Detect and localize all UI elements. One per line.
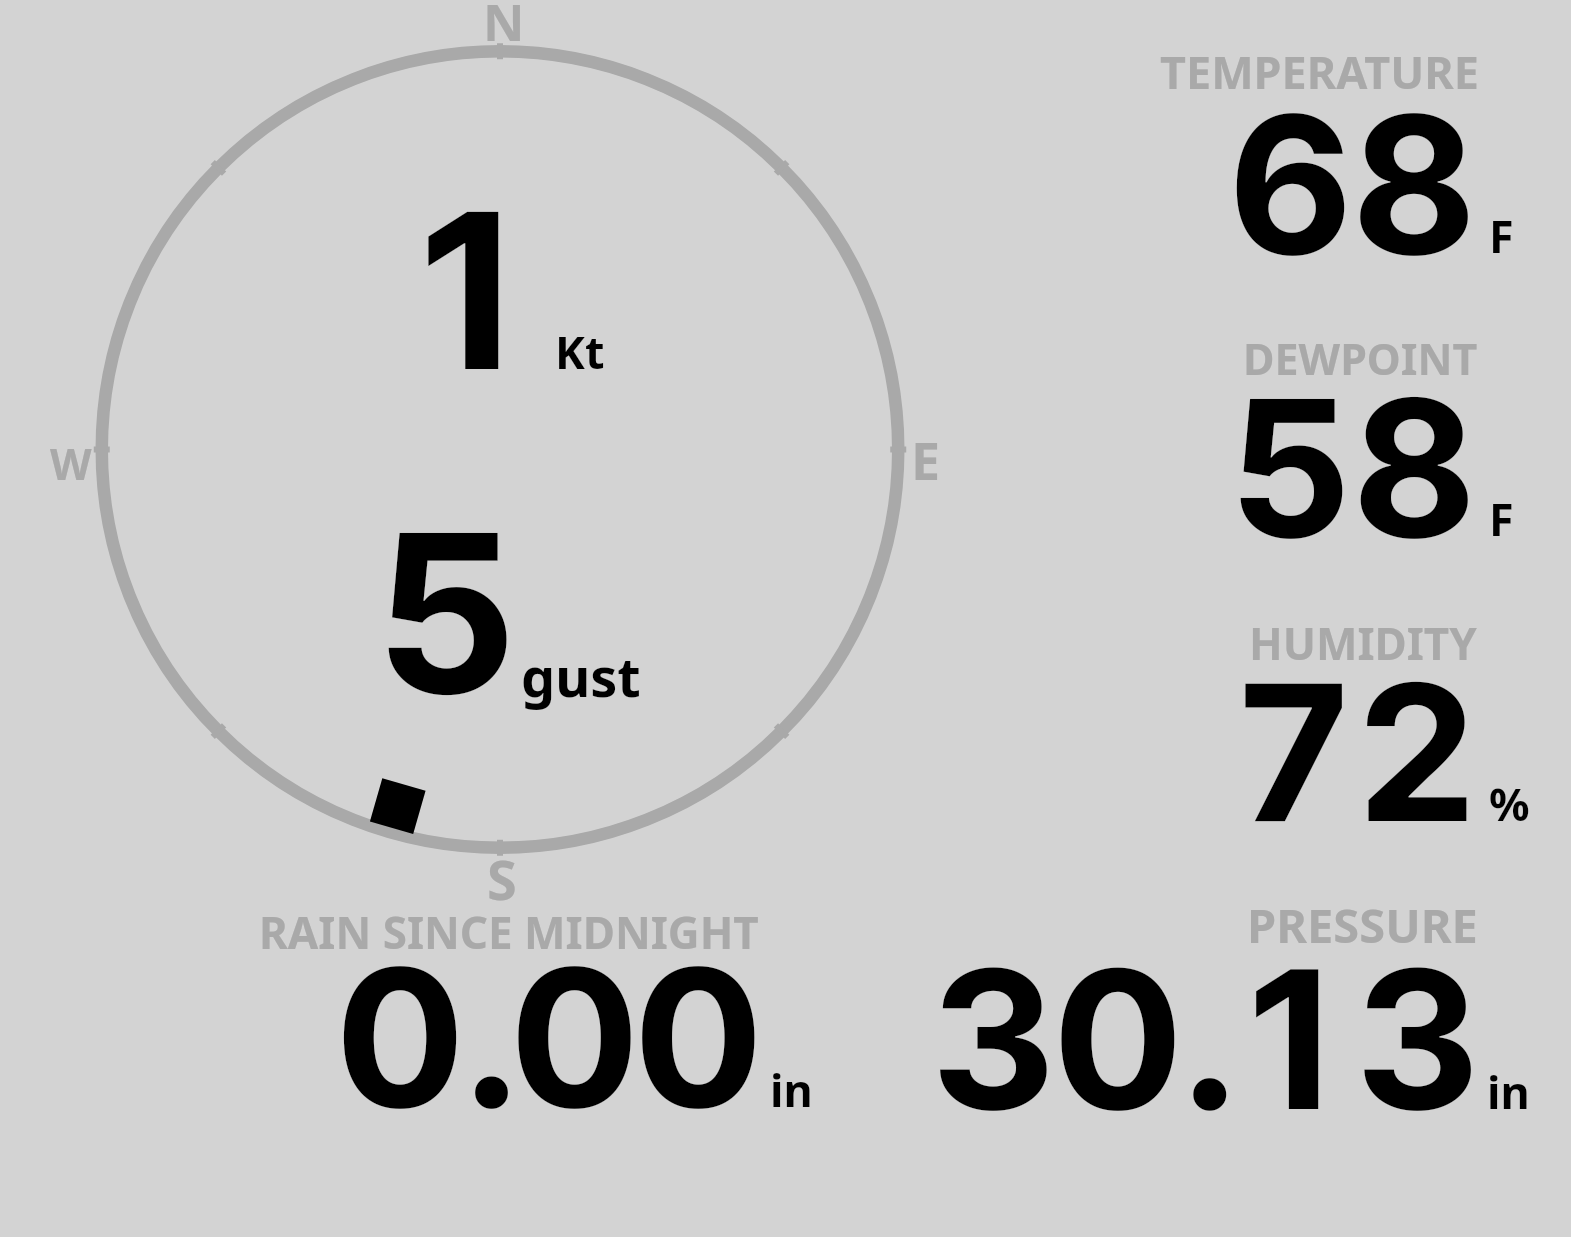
staticText: TEMPERATURE (1160, 41, 1479, 102)
staticText: F (1489, 488, 1514, 549)
staticText: in (770, 1059, 813, 1120)
staticText: N (483, 0, 525, 55)
staticText: 72 (1233, 638, 1479, 867)
staticText: 58 (1229, 353, 1476, 583)
staticText: in (1487, 1061, 1530, 1122)
staticText: S (487, 842, 517, 916)
staticText: 68 (1228, 69, 1476, 300)
staticText: RAIN SINCE MIDNIGHT (259, 902, 759, 962)
staticText: % (1489, 773, 1530, 834)
staticText: gust (521, 639, 641, 713)
button[interactable]: Dewpoint 58 degrees Fahrenheit (1140, 335, 1540, 550)
staticText: DEWPOINT (1243, 329, 1478, 388)
staticText: F (1489, 205, 1514, 266)
staticText: 5 (375, 480, 518, 746)
staticText: Kt (555, 321, 605, 382)
staticText: 0.00 (338, 922, 761, 1153)
button[interactable]: Pressure 30.13 inches (920, 900, 1490, 1120)
staticText: 1 (400, 160, 541, 421)
button[interactable]: Temperature 68 degrees Fahrenheit (1140, 50, 1540, 265)
staticText: HUMIDITY (1249, 613, 1477, 673)
button[interactable]: Humidity 72 percent (1140, 620, 1540, 835)
staticText: W (50, 434, 92, 493)
button[interactable]: Wind 1 knots, gusting 5 knots, direction… (96, 45, 904, 855)
staticText: E (911, 424, 941, 495)
staticText: PRESSURE (1247, 893, 1478, 957)
staticText: 30.13 (931, 923, 1480, 1155)
button[interactable]: Rain since midnight 0.00 inches (250, 905, 790, 1120)
